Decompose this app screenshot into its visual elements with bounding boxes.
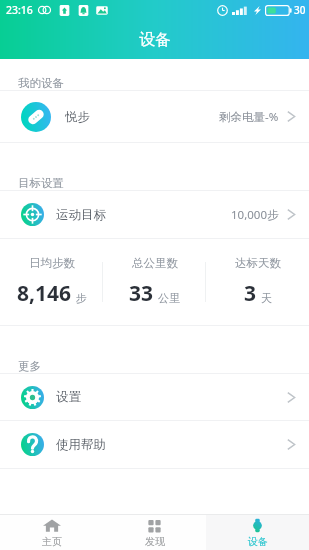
staticText: 步 [76, 291, 87, 305]
staticText: 目标设置 [18, 176, 64, 190]
button[interactable]: 使用帮助 [0, 421, 309, 468]
staticText: 设备 [139, 30, 171, 50]
staticText: 设备 [248, 535, 268, 548]
staticText: 30 [294, 3, 306, 17]
staticText: 10,000步 [231, 207, 279, 223]
button[interactable]: 主页 [0, 515, 103, 550]
staticText: 达标天数 [235, 256, 281, 270]
staticText: 更多 [18, 359, 41, 373]
staticText: 23:16 [6, 3, 33, 17]
staticText: 8,146 [17, 279, 72, 308]
staticText: 设置 [56, 389, 81, 405]
staticText: 主页 [42, 535, 62, 548]
staticText: 使用帮助 [56, 437, 106, 453]
button[interactable]: 悦步 [0, 91, 309, 142]
staticText: 总公里数 [132, 256, 178, 270]
staticText: 公里 [158, 291, 180, 305]
staticText: 3 [244, 279, 257, 308]
button[interactable]: 发现 [103, 515, 206, 550]
staticText: 悦步 [65, 109, 90, 125]
staticText: 33 [129, 279, 154, 308]
staticText: 日均步数 [29, 256, 75, 270]
staticText: 天 [261, 291, 272, 305]
button[interactable]: 设置 [0, 374, 309, 420]
staticText: 运动目标 [56, 207, 106, 223]
button[interactable]: 设备 [206, 515, 309, 550]
staticText: 我的设备 [18, 76, 64, 90]
staticText: 发现 [145, 535, 165, 548]
staticText: 剩余电量-% [219, 109, 279, 125]
button[interactable]: 运动目标 [0, 191, 309, 238]
